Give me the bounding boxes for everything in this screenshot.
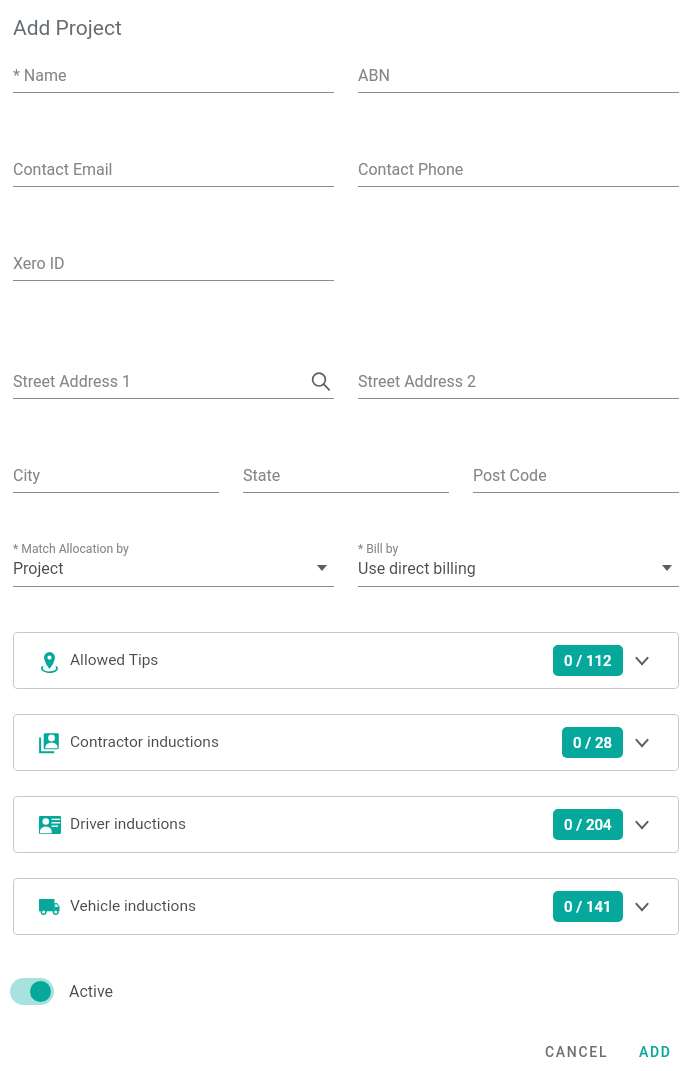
button[interactable]: Active bbox=[10, 974, 114, 1009]
button[interactable]: Expand Contractor inductions bbox=[632, 733, 652, 753]
button[interactable]: * Name bbox=[13, 62, 334, 93]
button[interactable]: Street Address 1 bbox=[13, 368, 334, 399]
button[interactable]: Contact Phone bbox=[358, 156, 679, 187]
staticText: CANCEL bbox=[545, 1044, 609, 1060]
staticText: Contractor inductions bbox=[70, 733, 219, 751]
button[interactable]: Contractor inductions bbox=[13, 714, 679, 771]
button[interactable]: Open * Bill by dropdown bbox=[657, 560, 677, 576]
button[interactable]: Street Address 2 bbox=[358, 368, 679, 399]
staticText: City bbox=[13, 466, 41, 485]
button[interactable]: Open * Match Allocation by dropdown bbox=[312, 560, 332, 576]
staticText: Active bbox=[69, 982, 114, 1001]
button[interactable]: Expand Vehicle inductions bbox=[632, 897, 652, 917]
button[interactable]: Driver inductions bbox=[13, 796, 679, 853]
button[interactable]: Contact Email bbox=[13, 156, 334, 187]
staticText: * Bill by bbox=[358, 542, 399, 556]
button[interactable]: Search address bbox=[308, 370, 330, 392]
button[interactable]: Xero ID bbox=[13, 250, 334, 281]
button[interactable]: Vehicle inductions bbox=[13, 878, 679, 935]
button[interactable]: Post Code bbox=[473, 462, 679, 493]
staticText: 0 / 204 bbox=[564, 816, 612, 834]
staticText: * Name bbox=[13, 66, 67, 85]
button[interactable]: Allowed Tips bbox=[13, 632, 679, 689]
staticText: Add Project bbox=[13, 16, 122, 41]
staticText: Xero ID bbox=[13, 254, 65, 273]
button[interactable]: CANCEL bbox=[533, 1036, 621, 1068]
button[interactable]: City bbox=[13, 462, 219, 493]
button[interactable]: * Bill by bbox=[358, 538, 679, 587]
staticText: 0 / 112 bbox=[564, 652, 612, 670]
button[interactable]: Expand Driver inductions bbox=[632, 815, 652, 835]
staticText: Contact Email bbox=[13, 160, 113, 179]
staticText: State bbox=[243, 466, 281, 485]
staticText: Post Code bbox=[473, 466, 547, 485]
button[interactable]: ABN bbox=[358, 62, 679, 93]
button[interactable]: ADD bbox=[627, 1036, 684, 1068]
staticText: Driver inductions bbox=[70, 815, 186, 833]
button[interactable]: Expand Allowed Tips bbox=[632, 651, 652, 671]
staticText: Street Address 2 bbox=[358, 372, 476, 391]
staticText: * Match Allocation by bbox=[13, 542, 129, 556]
staticText: 0 / 28 bbox=[573, 734, 612, 752]
staticText: ABN bbox=[358, 66, 390, 85]
staticText: Vehicle inductions bbox=[70, 897, 196, 915]
staticText: Use direct billing bbox=[358, 559, 476, 578]
staticText: Project bbox=[13, 559, 64, 578]
staticText: 0 / 141 bbox=[564, 898, 612, 916]
button[interactable]: State bbox=[243, 462, 449, 493]
staticText: Contact Phone bbox=[358, 160, 464, 179]
staticText: ADD bbox=[639, 1044, 672, 1060]
button[interactable]: * Match Allocation by bbox=[13, 538, 334, 587]
staticText: Allowed Tips bbox=[70, 651, 159, 669]
staticText: Street Address 1 bbox=[13, 372, 131, 391]
